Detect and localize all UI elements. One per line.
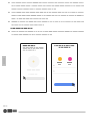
button[interactable]: Brand footer <box>3 104 87 115</box>
button[interactable]: Section tab <box>2 56 6 66</box>
button[interactable]: Choose account screen <box>21 44 46 92</box>
other: Setup instructions <box>7 1 86 40</box>
button[interactable]: Select application screen <box>52 44 77 92</box>
button[interactable]: Sun app <box>57 57 62 65</box>
button[interactable]: Continue <box>54 83 75 86</box>
button[interactable]: Flower app <box>67 57 72 65</box>
